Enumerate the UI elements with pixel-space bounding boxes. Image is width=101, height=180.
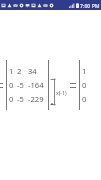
staticText: 1 [9,66,14,76]
staticText: 1 [82,66,87,76]
staticText: 2 [17,66,22,76]
staticText: 0 [9,94,14,104]
staticText: -5 [17,94,24,104]
staticText: 7:00 PM [80,2,100,9]
staticText: -5 [17,80,24,90]
staticText: 0 [82,80,87,90]
staticText: 0 [9,80,14,90]
staticText: 0 [82,94,87,104]
staticText: -229 [28,94,44,104]
button[interactable]: Matrix row reduction step [0,58,87,112]
staticText: -164 [28,80,44,90]
staticText: 34 [28,66,37,76]
staticText: x(-1) [56,89,67,96]
